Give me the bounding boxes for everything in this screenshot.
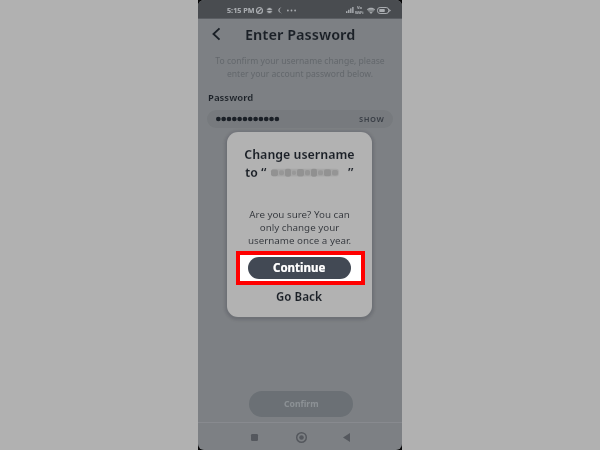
- button[interactable]: Back: [335, 426, 357, 448]
- staticText: Confirm: [284, 398, 319, 410]
- button[interactable]: SHOW: [355, 112, 389, 126]
- staticText: Password: [208, 91, 254, 104]
- staticText: Change username: [231, 146, 368, 163]
- staticText: Go Back: [276, 289, 323, 305]
- staticText: Vo: [357, 5, 363, 10]
- button[interactable]: SHOW: [207, 110, 393, 128]
- button[interactable]: Back: [205, 23, 227, 45]
- button[interactable]: Confirm: [249, 391, 353, 417]
- staticText: Are you sure? You can only change your u…: [231, 208, 368, 247]
- staticText: Continue: [273, 260, 326, 276]
- staticText: ”: [348, 164, 354, 181]
- button[interactable]: Go Back: [227, 287, 372, 307]
- button[interactable]: Home: [290, 426, 312, 448]
- button[interactable]: Recent apps: [243, 426, 265, 448]
- button[interactable]: Continue: [248, 257, 351, 279]
- staticText: 5:15 PM: [227, 5, 255, 15]
- staticText: SHOW: [359, 114, 385, 124]
- staticText: To confirm your username change, please …: [204, 55, 396, 79]
- staticText: to “: [245, 164, 267, 181]
- staticText: Enter Password: [245, 25, 356, 44]
- staticText: WiFi: [355, 10, 364, 15]
